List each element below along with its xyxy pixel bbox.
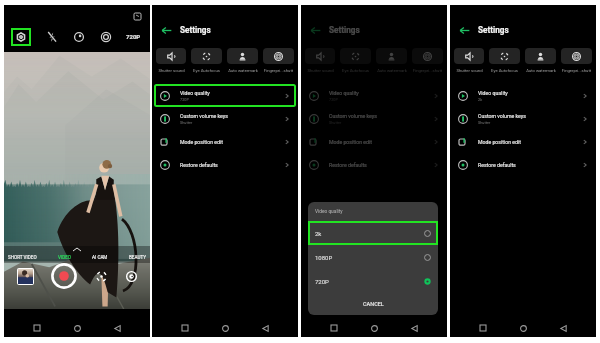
staticText: Eye Autofocus (342, 68, 369, 73)
button[interactable]: Mode position edit (452, 130, 594, 153)
staticText: 1080P (315, 254, 333, 261)
staticText: 2k (315, 230, 322, 237)
button[interactable]: Restore defaults (154, 153, 296, 176)
button[interactable]: Back (407, 321, 421, 335)
staticText: Eye Autofocus (491, 68, 518, 73)
button[interactable]: AI CAM (92, 255, 108, 260)
button[interactable]: Home (367, 321, 381, 335)
button[interactable]: Shutter sound (156, 48, 186, 73)
button[interactable]: Switch camera (125, 270, 138, 283)
staticText: SHORT VIDEO (8, 255, 37, 260)
button[interactable]: Eye Autofocus (340, 48, 371, 73)
button[interactable]: Auto watermark (376, 48, 407, 73)
staticText: Mode position edit (180, 139, 223, 145)
button[interactable]: Expand controls (134, 13, 141, 20)
staticText: CANCEL (363, 301, 384, 307)
staticText: AI CAM (92, 255, 108, 260)
button[interactable]: Recents (327, 321, 341, 335)
button[interactable]: 720P (308, 269, 438, 293)
staticText: Auto watermark (526, 68, 556, 73)
button[interactable]: Back (309, 24, 322, 37)
button[interactable]: 720P (126, 33, 141, 40)
button[interactable]: Settings (11, 28, 31, 46)
staticText: Settings (478, 25, 509, 35)
button[interactable]: VIDEO (58, 255, 71, 260)
button[interactable]: Recents (476, 321, 490, 335)
staticText: Custom volume keys (478, 113, 526, 119)
staticText: Shutter sound (158, 68, 185, 73)
button[interactable]: Home (367, 321, 381, 335)
button[interactable]: 2k (308, 221, 438, 245)
staticText: 720P (180, 97, 189, 101)
staticText: BEAUTY (129, 255, 146, 260)
staticText: Settings (180, 25, 211, 35)
button[interactable]: Fingerpri...shutter (412, 48, 443, 73)
button[interactable]: Shutter sound (305, 48, 335, 73)
button[interactable]: Gallery (18, 269, 33, 284)
button[interactable]: Restore defaults (452, 153, 594, 176)
button[interactable]: Flash off (45, 30, 58, 43)
staticText: Video quality (329, 90, 359, 96)
staticText: Settings (329, 25, 360, 35)
staticText: Mode position edit (329, 139, 372, 145)
button[interactable]: Back (458, 24, 471, 37)
button[interactable]: Mode position edit (303, 130, 445, 153)
staticText: Mode position edit (478, 139, 521, 145)
staticText: Custom volume keys (180, 113, 228, 119)
button[interactable]: Custom volume keys (154, 107, 296, 130)
button[interactable]: Back (110, 321, 124, 335)
button[interactable]: Restore defaults (303, 153, 445, 176)
button[interactable]: SHORT VIDEO (8, 255, 37, 260)
staticText: Video quality (315, 209, 343, 215)
button[interactable]: Fingerpri...shutter (263, 48, 294, 73)
button[interactable]: Filters (72, 30, 85, 43)
staticText: 720P (126, 33, 141, 40)
button[interactable]: Fingerpri...shutter (561, 48, 592, 73)
button[interactable]: Eye Autofocus (191, 48, 222, 73)
button[interactable]: Video quality (303, 84, 445, 107)
button[interactable]: Video quality (452, 84, 594, 107)
staticText: 720P (315, 278, 329, 285)
button[interactable]: AI scene (95, 270, 108, 283)
button[interactable]: Back (407, 321, 421, 335)
staticText: Restore defaults (180, 162, 218, 168)
staticText: VIDEO (58, 255, 71, 260)
staticText: Eye Autofocus (193, 68, 220, 73)
button[interactable]: Back (556, 321, 570, 335)
button[interactable]: Auto watermark (227, 48, 258, 73)
staticText: Fingerpri...shutter (263, 68, 294, 73)
button[interactable]: Eye Autofocus (489, 48, 520, 73)
staticText: 720P (329, 97, 338, 101)
button[interactable]: Auto watermark (525, 48, 556, 73)
button[interactable]: Recents (178, 321, 192, 335)
button[interactable]: Custom volume keys (452, 107, 594, 130)
button[interactable]: CANCEL (308, 293, 438, 315)
staticText: Fingerpri...shutter (412, 68, 443, 73)
button[interactable]: Record (51, 263, 77, 289)
button[interactable]: Shutter sound (454, 48, 484, 73)
button[interactable]: BEAUTY (129, 255, 146, 260)
staticText: Shutter sound (307, 68, 334, 73)
button[interactable]: 1080P (308, 245, 438, 269)
staticText: Shutter (329, 120, 342, 124)
button[interactable]: Back (258, 321, 272, 335)
button[interactable]: Video quality (154, 84, 296, 107)
staticText: Restore defaults (329, 162, 367, 168)
button[interactable]: Recents (327, 321, 341, 335)
button[interactable]: Custom volume keys (303, 107, 445, 130)
staticText: Restore defaults (478, 162, 516, 168)
staticText: Auto watermark (377, 68, 407, 73)
button[interactable]: Mode position edit (154, 130, 296, 153)
staticText: Auto watermark (228, 68, 258, 73)
button[interactable]: Back (160, 24, 173, 37)
button[interactable]: Home (218, 321, 232, 335)
button[interactable]: Home (70, 321, 84, 335)
button[interactable]: Recents (30, 321, 44, 335)
button[interactable]: Home (516, 321, 530, 335)
staticText: Custom volume keys (329, 113, 377, 119)
staticText: Shutter (180, 120, 193, 124)
button[interactable]: HDR mode (99, 30, 112, 43)
staticText: Video quality (180, 90, 210, 96)
staticText: Shutter (478, 120, 491, 124)
staticText: 2k (478, 97, 483, 101)
